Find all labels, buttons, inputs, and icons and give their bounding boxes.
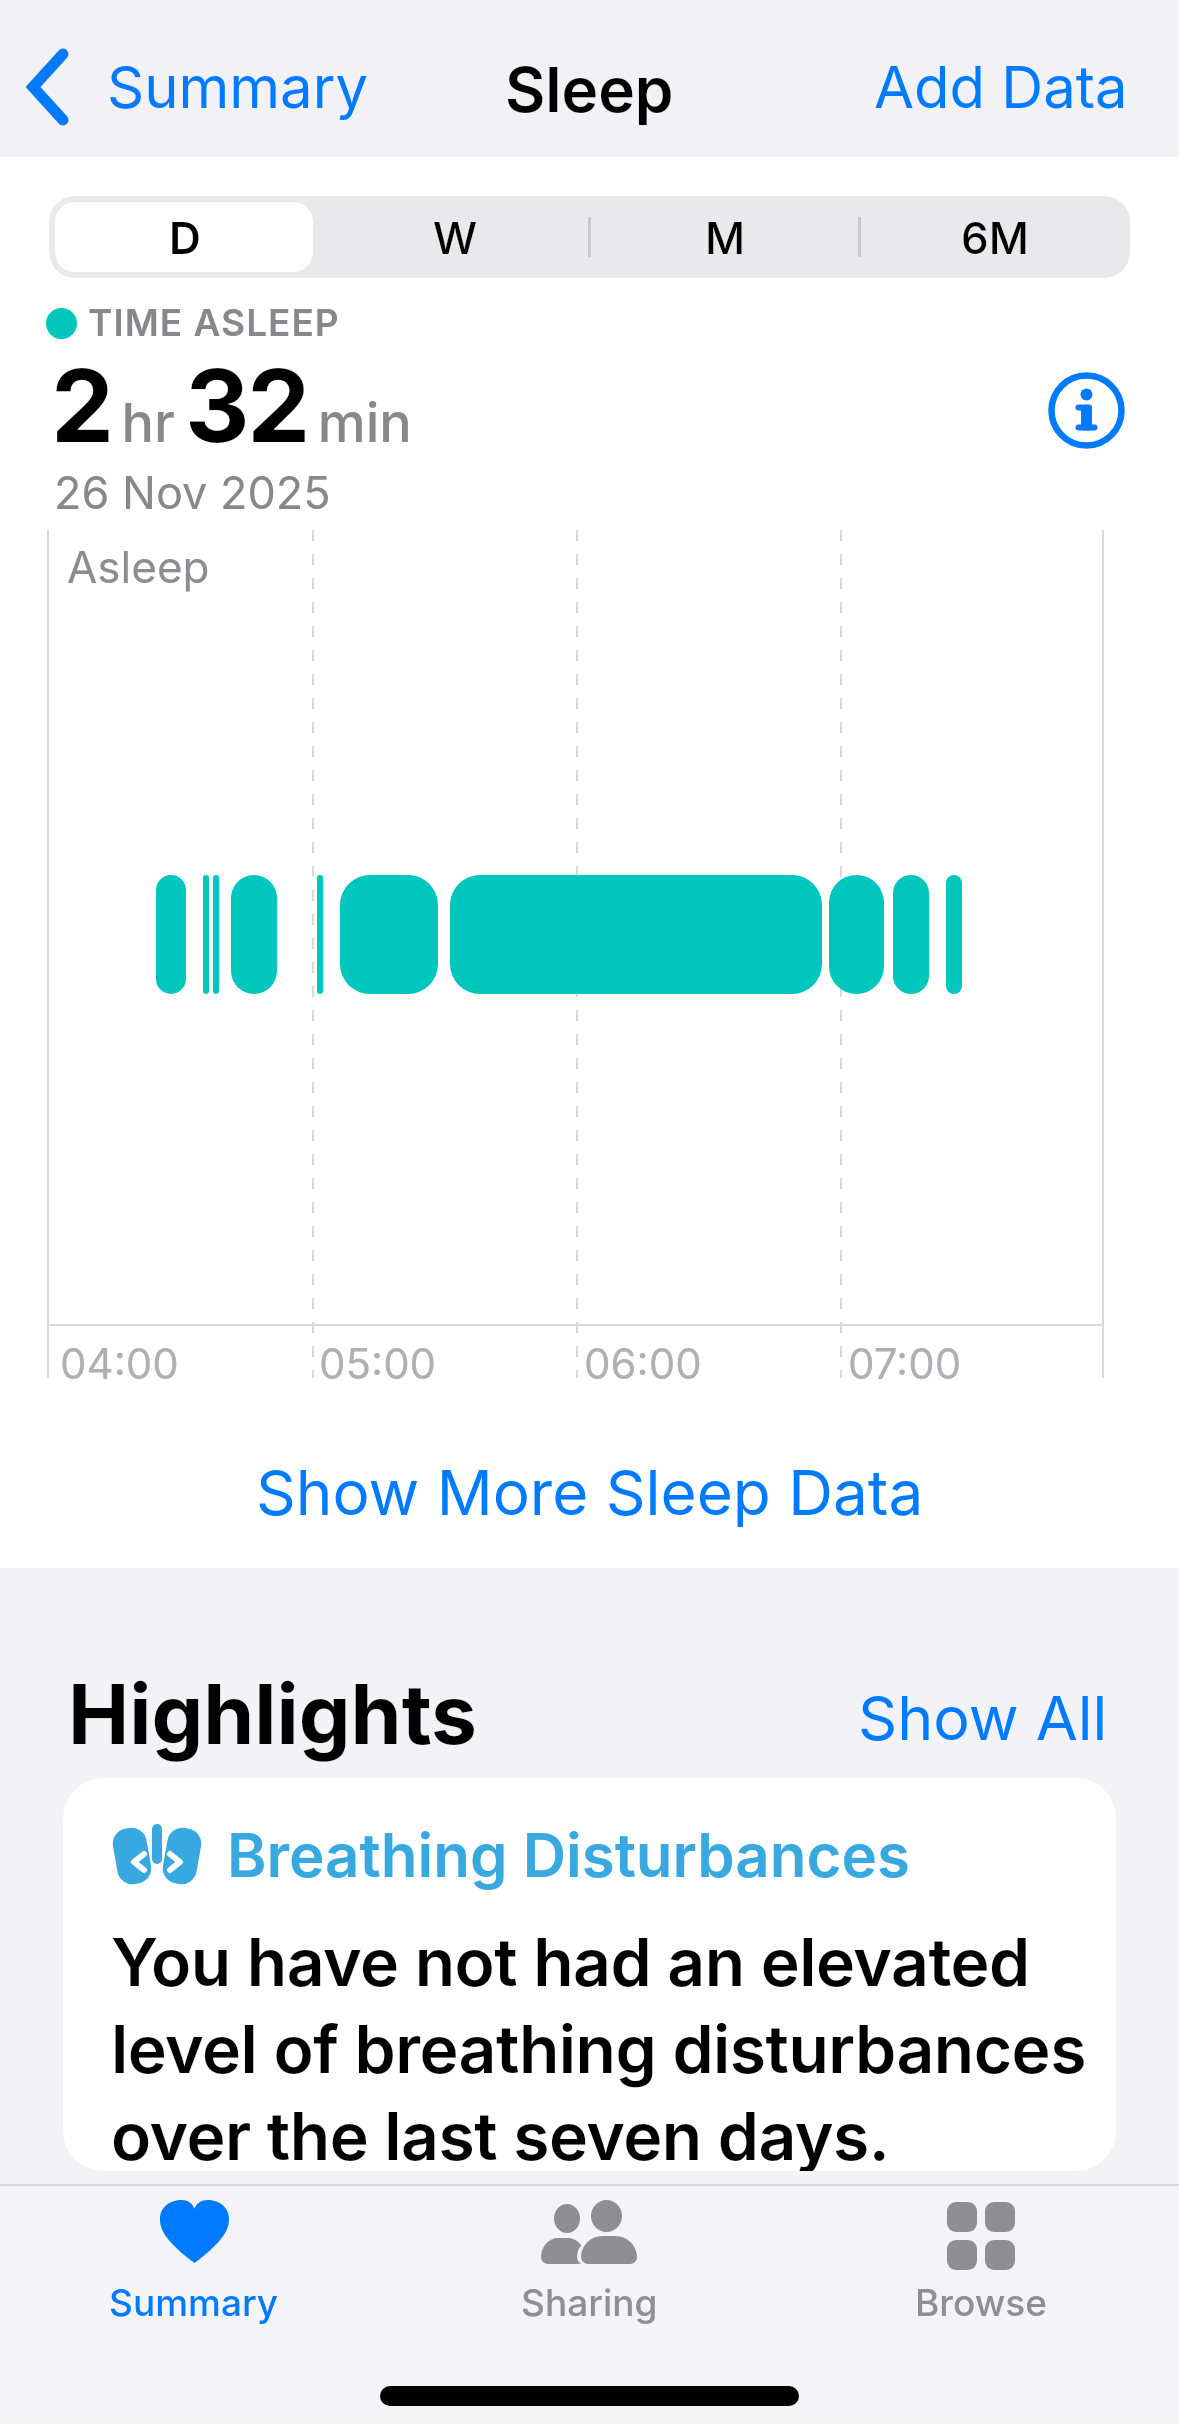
staticText: You have not had an elevated level of br… [111,1922,1086,2171]
staticText: Summary [109,2280,279,2325]
button[interactable]: Sharing [479,2192,699,2332]
button[interactable] [1048,372,1125,449]
staticText: M [705,211,746,264]
staticText: 05:00 [319,1338,437,1389]
staticText: Breathing Disturbances [227,1819,910,1892]
button[interactable]: M [590,196,860,278]
button[interactable]: Browse [871,2192,1091,2332]
staticText: Highlights [68,1665,477,1764]
staticText: Summary [107,52,369,122]
staticText: 6M [961,211,1029,264]
staticText: W [433,211,478,264]
staticText: TIME ASLEEP [88,300,340,345]
staticText: 26 Nov 2025 [54,465,331,519]
staticText: 2 hr 32 min [51,345,412,466]
button[interactable]: Summary [84,2192,304,2332]
staticText: Sleep [505,52,674,127]
staticText: 04:00 [60,1338,179,1389]
staticText: Sharing [521,2280,658,2325]
staticText: Browse [915,2280,1047,2325]
button[interactable]: Breathing Disturbances [63,1778,1116,2171]
staticText: 06:00 [584,1338,702,1389]
button[interactable]: Add Data [874,52,1128,122]
staticText: 07:00 [848,1338,962,1389]
staticText: D [169,211,201,264]
button[interactable]: Show All [858,1681,1108,1755]
button[interactable]: Summary [26,49,369,125]
button[interactable]: D [49,196,320,278]
button[interactable]: 6M [860,196,1130,278]
button[interactable]: Show More Sleep Data [256,1455,924,1530]
staticText: Asleep [67,540,210,593]
button[interactable]: W [320,196,590,278]
